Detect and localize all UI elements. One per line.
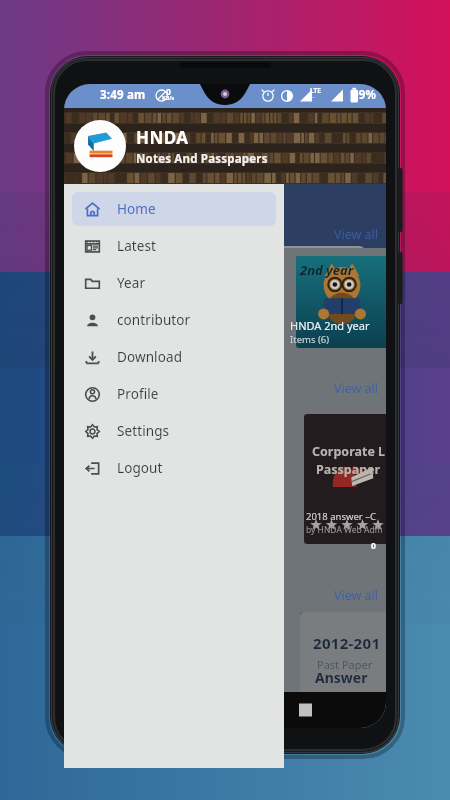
button[interactable]: Latest: [72, 229, 276, 263]
staticText: Profile: [117, 385, 159, 403]
button[interactable]: Logout: [72, 451, 276, 485]
button[interactable]: Year: [72, 266, 276, 300]
staticText: Year: [117, 274, 146, 292]
staticText: View all: [334, 226, 379, 243]
staticText: Corporate L: [312, 443, 386, 460]
staticText: Past Paper: [317, 657, 373, 672]
button[interactable]: HNDA: [64, 108, 284, 184]
staticText: ··: [312, 93, 316, 101]
staticText: HNDA 2nd year: [290, 318, 370, 333]
staticText: contributor: [117, 311, 191, 329]
staticText: Settings: [117, 422, 170, 440]
staticText: Passpaper: [316, 461, 381, 478]
button[interactable]: View all: [330, 378, 383, 399]
staticText: by HNDA Web Adm: [306, 524, 383, 536]
button[interactable]: Download: [72, 340, 276, 374]
button[interactable]: contributor: [72, 303, 276, 337]
staticText: Latest: [117, 237, 157, 255]
button[interactable]: Profile: [72, 377, 276, 411]
button[interactable]: View all: [330, 585, 383, 606]
staticText: 0: [371, 540, 376, 552]
staticText: LTE: [310, 86, 321, 95]
staticText: 0: [166, 86, 171, 98]
button[interactable]: Recent apps: [291, 692, 327, 728]
staticText: Home: [117, 200, 156, 218]
button[interactable]: Settings: [72, 414, 276, 448]
staticText: HNDA: [136, 126, 189, 149]
staticText: Download: [117, 348, 183, 366]
staticText: Notes And Passpapers: [136, 151, 268, 167]
staticText: View all: [334, 380, 379, 397]
button[interactable]: View all: [330, 224, 383, 245]
staticText: Logout: [117, 459, 163, 477]
button[interactable]: Search: [360, 166, 386, 192]
staticText: Answer: [315, 668, 368, 687]
staticText: Items (6): [290, 333, 330, 346]
staticText: 2nd year: [300, 261, 354, 279]
button[interactable]: Home: [72, 192, 276, 226]
staticText: View all: [334, 587, 379, 604]
staticText: 99%: [352, 87, 377, 103]
staticText: KB/s: [162, 94, 175, 101]
staticText: 3:49 am: [100, 87, 146, 103]
staticText: 2018 answer –C: [306, 510, 376, 523]
staticText: 2012-201: [313, 633, 381, 653]
